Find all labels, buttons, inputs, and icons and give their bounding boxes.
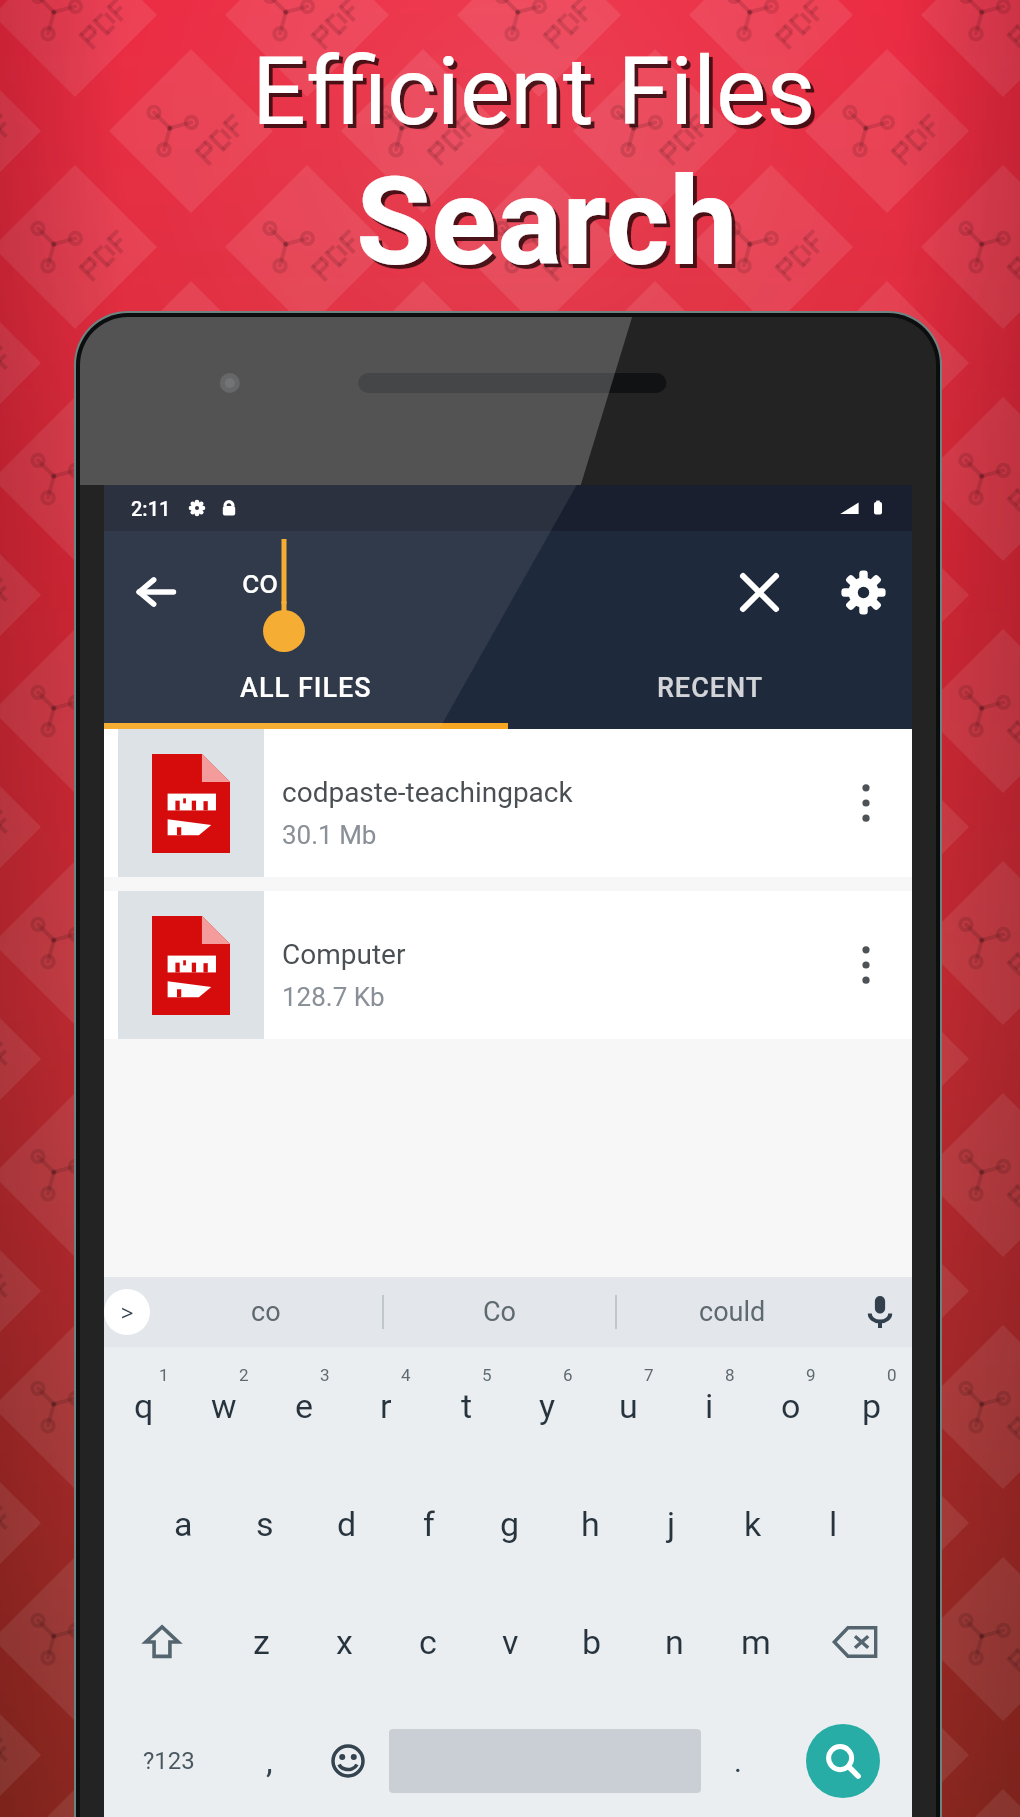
button[interactable]: , xyxy=(233,1701,306,1817)
staticText: 8 xyxy=(725,1365,735,1385)
staticText: v xyxy=(502,1622,519,1662)
staticText: Efficient Files xyxy=(252,36,816,147)
staticText: , xyxy=(266,1741,273,1781)
staticText: > xyxy=(121,1297,134,1327)
staticText: c xyxy=(419,1622,437,1662)
staticText: Efficient Files xyxy=(256,40,820,151)
button[interactable]: w xyxy=(184,1347,264,1465)
staticText: 128.7 Kb xyxy=(282,982,385,1012)
button[interactable]: e xyxy=(264,1347,345,1465)
staticText: codpaste-teachingpack xyxy=(282,776,573,809)
staticText: co xyxy=(242,562,279,601)
staticText: p xyxy=(862,1386,882,1426)
button[interactable]: p xyxy=(831,1347,912,1465)
button[interactable]: b xyxy=(551,1583,633,1701)
button[interactable]: f xyxy=(388,1465,469,1583)
staticText: Search xyxy=(356,151,738,294)
button[interactable]: j xyxy=(631,1465,712,1583)
staticText: Search xyxy=(360,155,742,298)
staticText: m xyxy=(741,1622,771,1662)
staticText: u xyxy=(619,1386,638,1426)
staticText: ?123 xyxy=(143,1747,195,1775)
staticText: Computer xyxy=(282,938,406,971)
staticText: n xyxy=(665,1622,684,1662)
button[interactable]: Clear xyxy=(728,561,790,623)
button[interactable]: More options xyxy=(832,729,900,877)
staticText: y xyxy=(539,1386,556,1426)
button[interactable]: k xyxy=(712,1465,793,1583)
button[interactable]: t xyxy=(426,1347,507,1465)
staticText: j xyxy=(667,1504,676,1544)
button[interactable]: Backspace xyxy=(797,1583,912,1701)
button[interactable]: More options xyxy=(832,891,900,1039)
button[interactable]: r xyxy=(345,1347,426,1465)
staticText: 7 xyxy=(644,1365,654,1385)
button[interactable]: v xyxy=(469,1583,551,1701)
button[interactable]: RECENT xyxy=(508,653,912,723)
button[interactable]: codpaste-teachingpack xyxy=(104,729,912,877)
button[interactable]: l xyxy=(793,1465,874,1583)
staticText: b xyxy=(582,1622,602,1662)
button[interactable]: Computer xyxy=(104,891,912,1039)
staticText: could xyxy=(699,1296,766,1328)
staticText: 9 xyxy=(806,1365,816,1385)
button[interactable]: s xyxy=(224,1465,306,1583)
staticText: r xyxy=(380,1386,392,1426)
staticText: . xyxy=(734,1744,742,1779)
button[interactable]: g xyxy=(469,1465,550,1583)
button[interactable]: x xyxy=(303,1583,386,1701)
staticText: 6 xyxy=(563,1365,573,1385)
button[interactable]: Shift xyxy=(104,1583,220,1701)
button[interactable]: y xyxy=(507,1347,588,1465)
staticText: k xyxy=(744,1504,762,1544)
button[interactable]: n xyxy=(633,1583,715,1701)
button[interactable]: ALL FILES xyxy=(104,653,508,723)
button[interactable]: q xyxy=(104,1347,184,1465)
staticText: h xyxy=(581,1504,600,1544)
button[interactable]: h xyxy=(550,1465,631,1583)
button[interactable]: ?123 xyxy=(104,1701,233,1817)
button[interactable]: m xyxy=(715,1583,797,1701)
button[interactable]: o xyxy=(750,1347,831,1465)
staticText: RECENT xyxy=(657,672,764,704)
staticText: l xyxy=(829,1504,838,1544)
button[interactable]: Voice input xyxy=(848,1296,912,1328)
button[interactable]: z xyxy=(220,1583,303,1701)
staticText: 4 xyxy=(401,1365,411,1385)
button[interactable]: Settings xyxy=(832,561,894,623)
staticText: ALL FILES xyxy=(240,672,372,704)
button[interactable]: Emoji xyxy=(306,1701,389,1817)
button[interactable]: u xyxy=(588,1347,669,1465)
staticText: 3 xyxy=(320,1365,330,1385)
staticText: 0 xyxy=(887,1365,897,1385)
button[interactable]: i xyxy=(669,1347,750,1465)
staticText: s xyxy=(256,1504,274,1544)
staticText: z xyxy=(253,1622,270,1662)
staticText: d xyxy=(337,1504,357,1544)
button[interactable]: a xyxy=(142,1465,224,1583)
button[interactable]: . xyxy=(701,1701,774,1817)
button[interactable]: co xyxy=(242,531,382,653)
staticText: 2 xyxy=(239,1365,249,1385)
staticText: Co xyxy=(483,1296,516,1328)
staticText: q xyxy=(134,1386,154,1426)
staticText: f xyxy=(423,1504,435,1544)
staticText: co xyxy=(251,1296,281,1328)
staticText: 1 xyxy=(159,1365,169,1385)
staticText: 5 xyxy=(482,1365,492,1385)
button[interactable]: Back xyxy=(124,560,188,624)
button[interactable]: Search xyxy=(806,1724,880,1798)
staticText: t xyxy=(461,1386,473,1426)
staticText: x xyxy=(336,1622,353,1662)
staticText: 2:11 xyxy=(131,497,171,520)
staticText: g xyxy=(500,1504,520,1544)
staticText: w xyxy=(211,1386,237,1426)
staticText: 30.1 Mb xyxy=(282,820,377,850)
button[interactable]: Expand xyxy=(104,1289,150,1335)
staticText: o xyxy=(781,1386,801,1426)
staticText: e xyxy=(295,1386,314,1426)
button[interactable]: d xyxy=(306,1465,388,1583)
staticText: i xyxy=(705,1386,714,1426)
button[interactable]: c xyxy=(386,1583,469,1701)
